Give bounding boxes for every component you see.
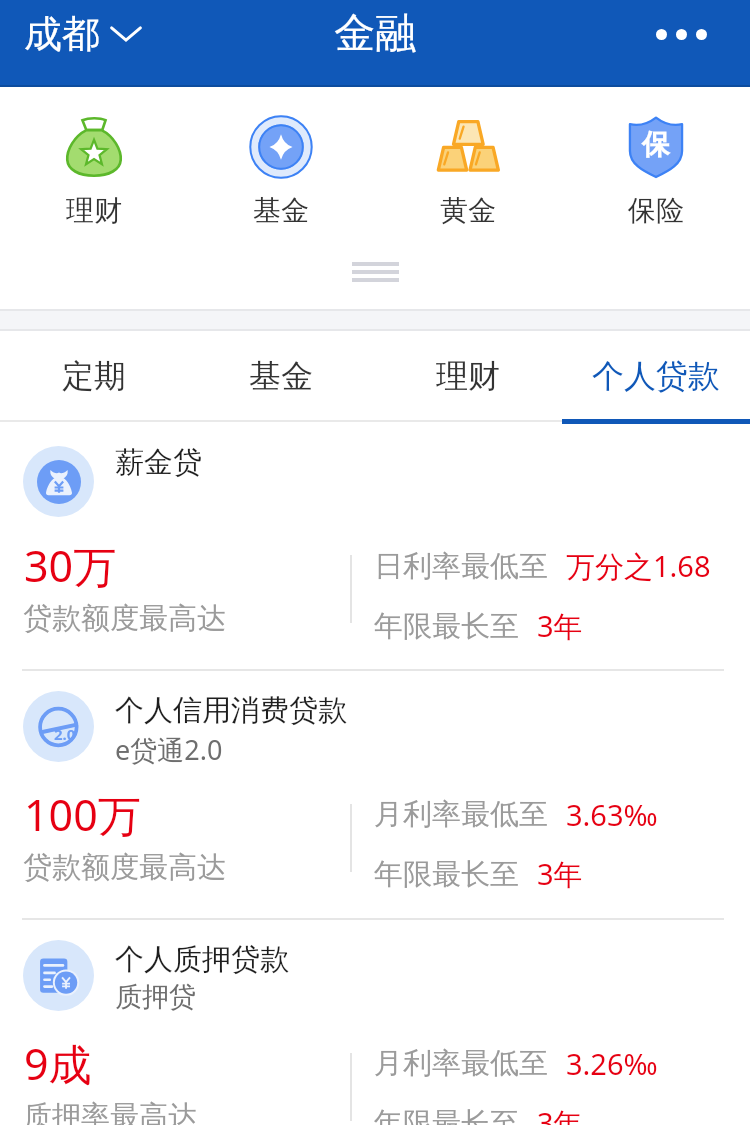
button[interactable]: 2.0: [0, 671, 750, 918]
staticText: 年限最长至: [374, 608, 519, 645]
staticText: 基金: [249, 356, 313, 396]
staticText: 3年: [537, 854, 583, 894]
staticText: 质押贷: [115, 980, 196, 1014]
button[interactable]: 成都: [0, 0, 157, 68]
button[interactable]: 个人质押贷款: [0, 920, 750, 1125]
staticText: 保险: [628, 193, 684, 228]
staticText: 9成: [24, 1034, 92, 1093]
staticText: 个人贷款: [592, 356, 720, 396]
staticText: 30万: [24, 536, 117, 595]
staticText: 保: [642, 127, 670, 162]
staticText: e贷通2.0: [115, 731, 223, 768]
staticText: 定期: [62, 356, 126, 396]
staticText: 贷款额度最高达: [23, 600, 226, 637]
staticText: 个人质押贷款: [115, 941, 289, 978]
button[interactable]: More options: [638, 11, 750, 58]
staticText: 3年: [537, 606, 583, 646]
staticText: 月利率最低至: [374, 796, 548, 833]
button[interactable]: 理财: [0, 87, 187, 263]
staticText: 理财: [66, 193, 122, 228]
staticText: 金融: [334, 8, 416, 60]
button[interactable]: 基金: [187, 87, 374, 263]
staticText: 薪金贷: [115, 444, 202, 481]
staticText: 黄金: [440, 193, 496, 228]
button[interactable]: 基金: [187, 331, 374, 422]
button[interactable]: 黄金: [374, 87, 562, 263]
staticText: 理财: [436, 356, 500, 396]
staticText: 日利率最低至: [374, 548, 548, 585]
button[interactable]: 定期: [0, 331, 187, 422]
button[interactable]: 理财: [374, 331, 562, 422]
staticText: 100万: [24, 785, 141, 844]
staticText: 基金: [253, 193, 309, 228]
staticText: 个人信用消费贷款: [115, 692, 347, 729]
staticText: 月利率最低至: [374, 1045, 548, 1082]
button[interactable]: 薪金贷: [0, 422, 750, 669]
button[interactable]: 保: [562, 87, 750, 263]
staticText: 万分之1.68: [566, 546, 711, 586]
staticText: 3年: [537, 1103, 583, 1125]
staticText: 年限最长至: [374, 1105, 519, 1125]
button[interactable]: 个人贷款: [562, 331, 750, 422]
staticText: 年限最长至: [374, 856, 519, 893]
staticText: 成都: [24, 10, 100, 58]
staticText: 质押率最高达: [23, 1098, 197, 1125]
staticText: 3.63‰: [566, 795, 658, 834]
staticText: 贷款额度最高达: [23, 849, 226, 886]
staticText: 2.0: [54, 724, 76, 744]
staticText: 3.26‰: [566, 1044, 658, 1083]
